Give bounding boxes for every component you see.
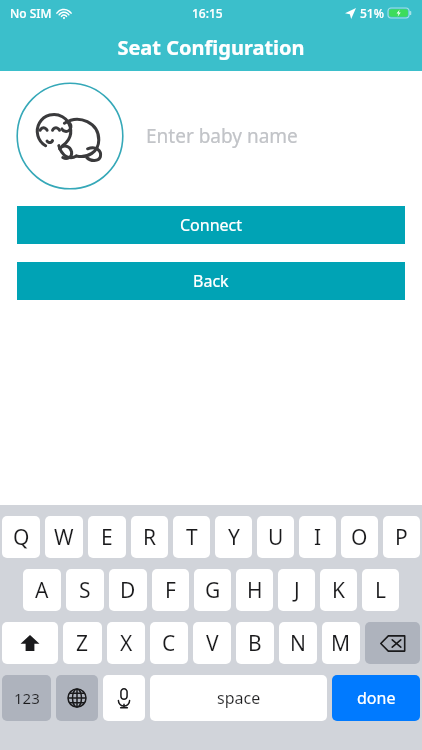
staticText: G (205, 576, 221, 605)
staticText: I (314, 523, 322, 552)
staticText: W (54, 523, 74, 552)
staticText: S (79, 576, 91, 605)
button[interactable]: J (278, 569, 315, 611)
staticText: A (35, 576, 49, 605)
button[interactable]: C (150, 622, 188, 664)
staticText: M (331, 629, 351, 658)
button[interactable]: Z (63, 622, 102, 664)
button[interactable]: T (173, 516, 210, 558)
staticText: space (217, 687, 261, 709)
button[interactable]: R (131, 516, 168, 558)
staticText: T (186, 523, 198, 552)
button[interactable]: F (152, 569, 189, 611)
staticText: F (165, 576, 176, 605)
button[interactable]: space (150, 675, 327, 721)
button[interactable]: 123 (2, 675, 51, 721)
staticText: O (351, 523, 368, 552)
staticText: D (120, 576, 136, 605)
staticText: L (375, 576, 387, 605)
staticText: U (268, 523, 284, 552)
button[interactable]: Connect (17, 206, 405, 244)
button[interactable]: P (383, 516, 420, 558)
button[interactable]: Enter baby name (146, 81, 406, 191)
staticText: N (290, 629, 306, 658)
button[interactable]: U (257, 516, 294, 558)
staticText: E (101, 523, 113, 552)
staticText: Seat Configuration (117, 34, 305, 61)
staticText: 51% (360, 5, 384, 21)
button[interactable]: Y (215, 516, 252, 558)
button[interactable]: S (66, 569, 104, 611)
button[interactable]: D (109, 569, 147, 611)
button[interactable]: K (320, 569, 357, 611)
button[interactable]: Q (2, 516, 40, 558)
staticText: H (247, 576, 263, 605)
staticText: X (120, 629, 133, 658)
staticText: J (294, 576, 300, 605)
staticText: Y (228, 523, 240, 552)
button[interactable]: X (107, 622, 145, 664)
button[interactable]: V (193, 622, 231, 664)
button[interactable]: N (279, 622, 317, 664)
button[interactable]: Shift (2, 622, 58, 664)
staticText: Back (193, 270, 229, 292)
staticText: Q (13, 523, 30, 552)
button[interactable]: Back (17, 262, 405, 300)
button[interactable]: done (332, 675, 420, 721)
staticText: Connect (180, 214, 243, 236)
staticText: K (332, 576, 345, 605)
button[interactable]: H (236, 569, 273, 611)
button[interactable]: Dictation (103, 675, 145, 721)
staticText: No SIM (10, 5, 52, 21)
button[interactable]: B (236, 622, 274, 664)
staticText: done (357, 687, 396, 709)
button[interactable]: G (194, 569, 231, 611)
button[interactable]: M (322, 622, 360, 664)
staticText: R (143, 523, 157, 552)
button[interactable]: E (88, 516, 126, 558)
button[interactable]: W (45, 516, 83, 558)
button[interactable]: Baby avatar (16, 82, 124, 190)
button[interactable]: L (362, 569, 399, 611)
staticText: B (248, 629, 262, 658)
staticText: 16:15 (192, 5, 223, 21)
staticText: C (162, 629, 176, 658)
staticText: Z (76, 629, 89, 658)
button[interactable]: O (341, 516, 378, 558)
button[interactable]: I (299, 516, 336, 558)
button[interactable]: Change keyboard language (56, 675, 98, 721)
staticText: Enter baby name (146, 123, 298, 149)
staticText: V (206, 629, 219, 658)
button[interactable]: Delete (365, 622, 420, 664)
staticText: P (395, 523, 408, 552)
staticText: 123 (14, 688, 40, 708)
button[interactable]: A (23, 569, 61, 611)
